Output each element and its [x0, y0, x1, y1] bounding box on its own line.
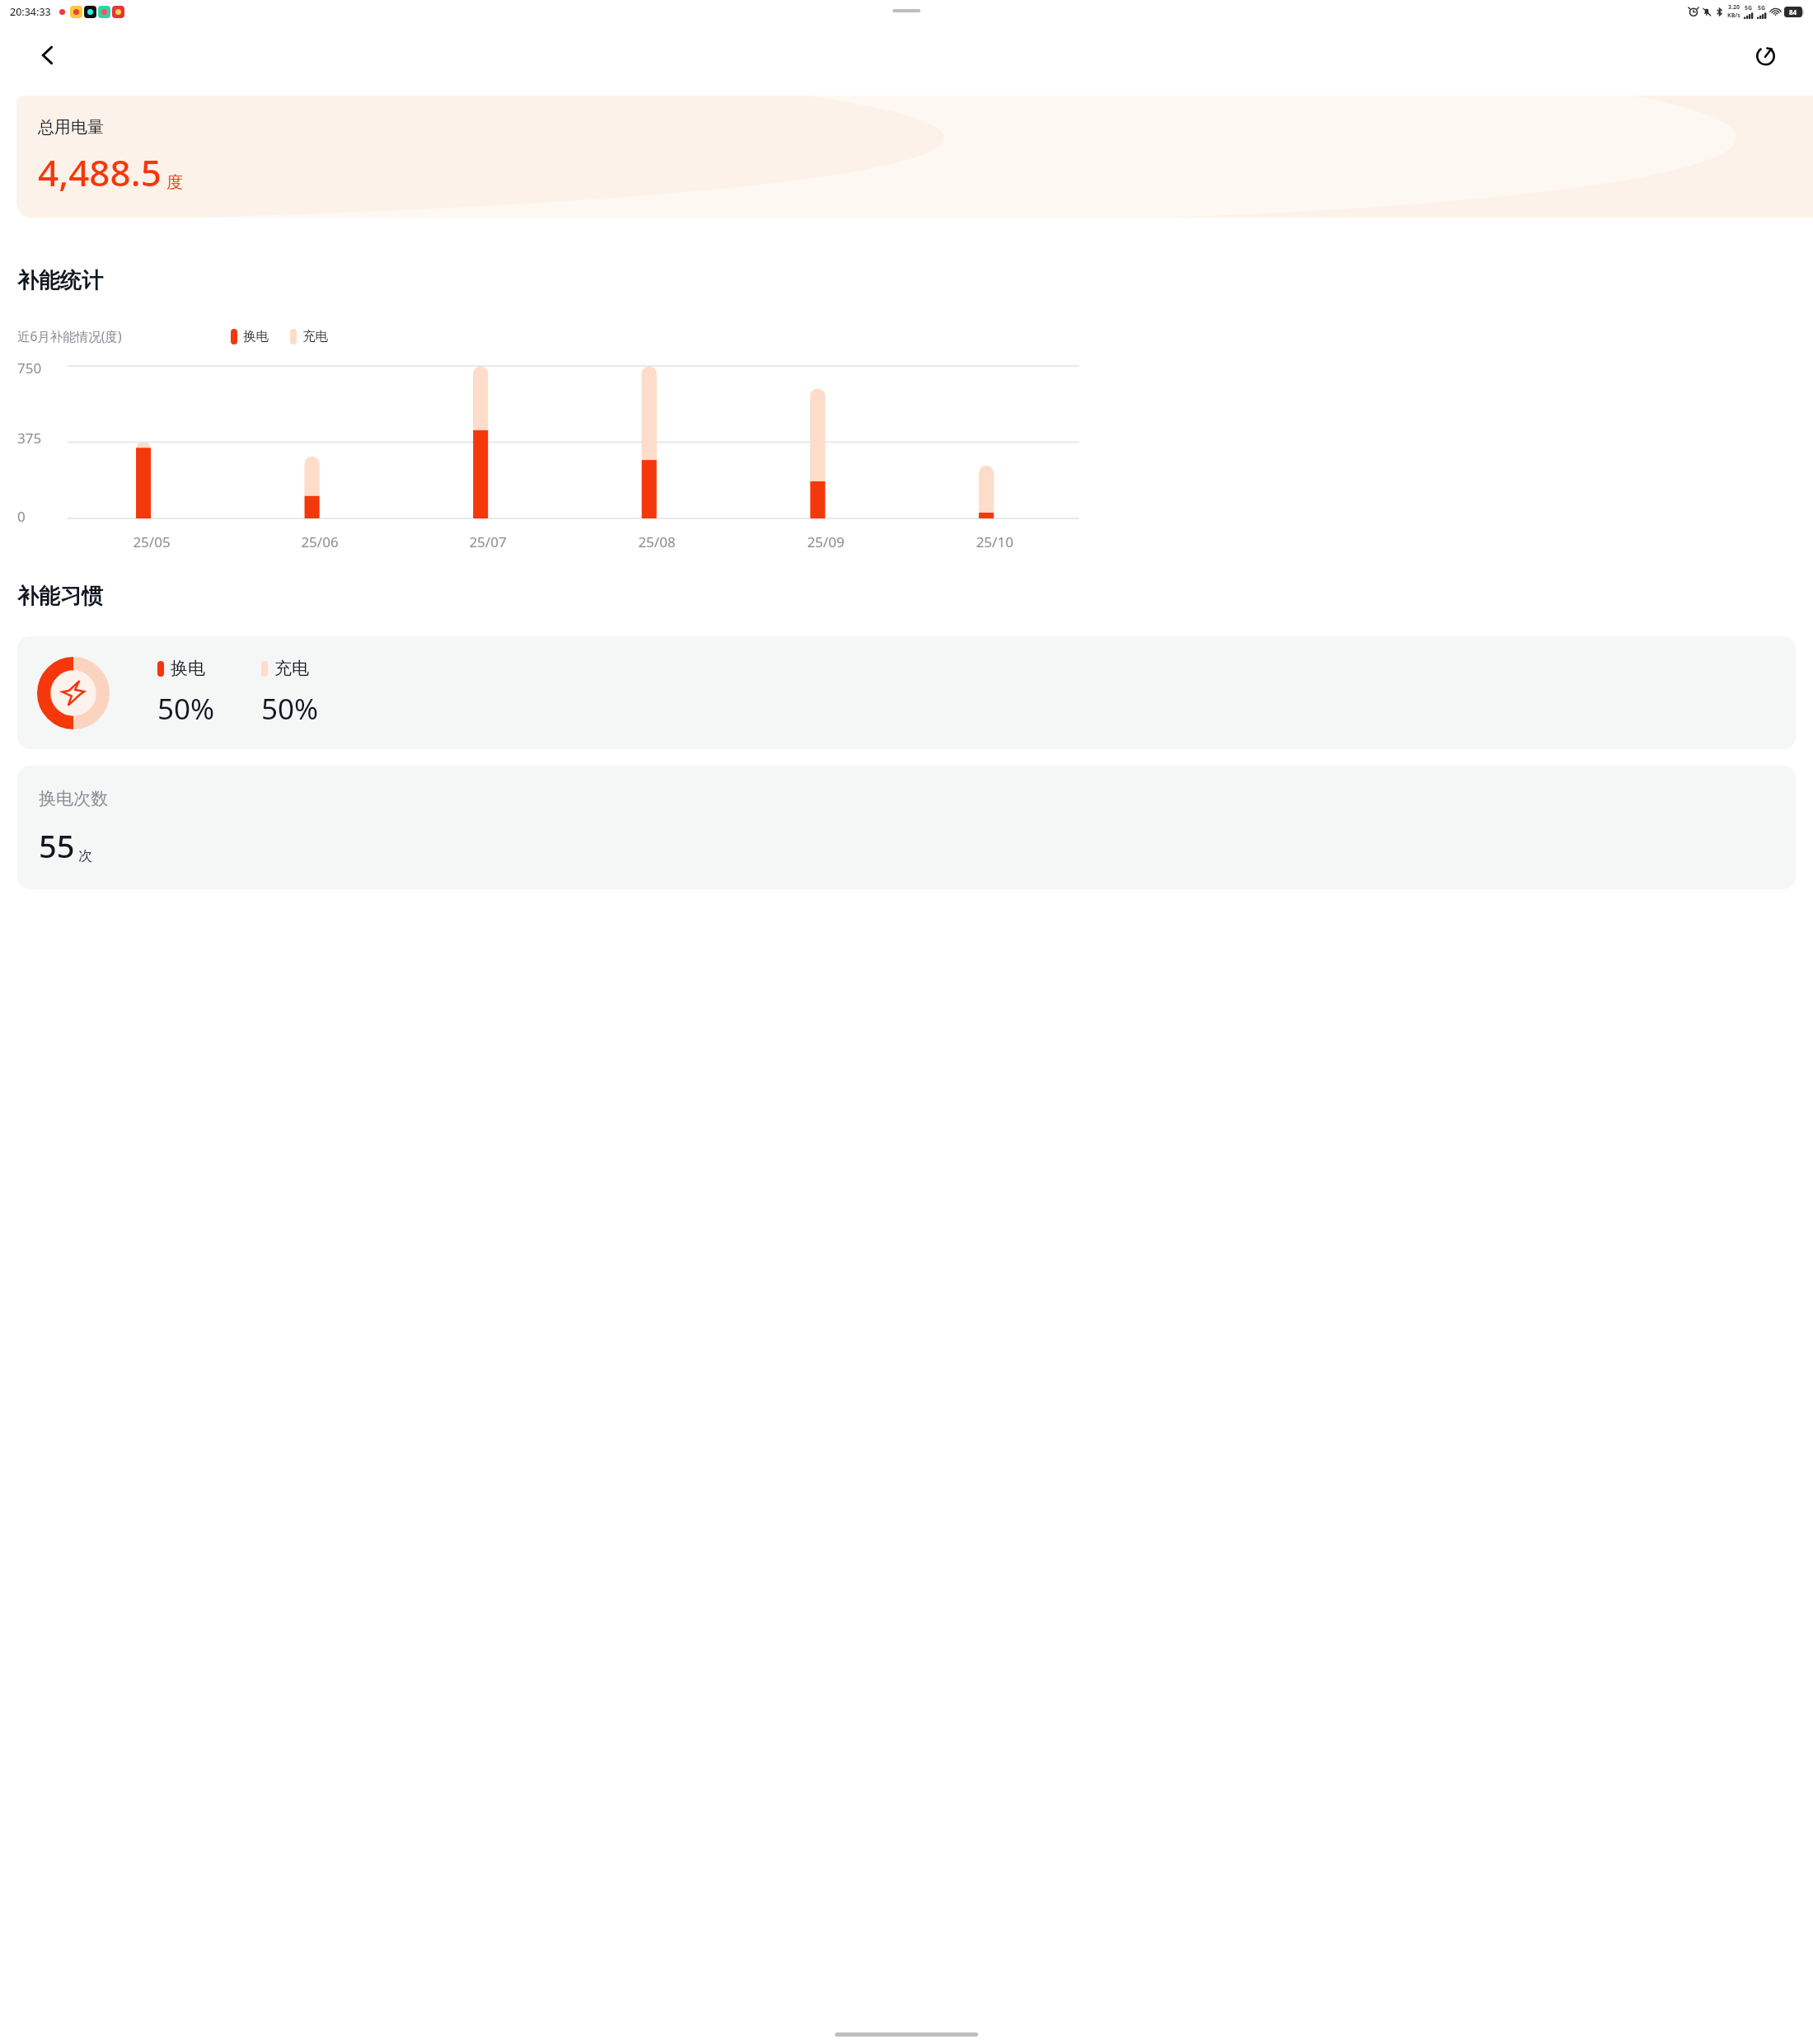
button[interactable]: 总用电量 — [16, 96, 1813, 218]
staticText: 3.20 — [1728, 3, 1740, 12]
staticText: 50% — [157, 689, 215, 729]
staticText: 换电次数 — [39, 788, 108, 809]
staticText: 补能习惯 — [17, 583, 103, 610]
button[interactable]: Refresh — [1745, 35, 1785, 75]
staticText: 55 — [39, 824, 75, 867]
staticText: KB/s — [1727, 12, 1740, 20]
staticText: 25/10 — [976, 532, 1014, 551]
button[interactable]: 换电 — [17, 636, 1796, 749]
staticText: 20:34:33 — [10, 5, 51, 19]
staticText: 25/06 — [301, 532, 339, 551]
staticText: 次 — [78, 847, 92, 865]
button[interactable]: 换电次数 — [17, 766, 1796, 889]
staticText: 充电 — [274, 658, 309, 679]
staticText: 充电 — [302, 328, 328, 345]
staticText: 5G — [1745, 4, 1753, 12]
staticText: 25/05 — [133, 532, 171, 551]
staticText: 0 — [17, 507, 26, 526]
staticText: 总用电量 — [38, 117, 104, 138]
staticText: 50% — [261, 689, 319, 729]
staticText: 25/09 — [807, 532, 845, 551]
staticText: 换电 — [243, 328, 269, 345]
staticText: 4,488.5 — [38, 148, 162, 197]
staticText: 度 — [166, 172, 183, 193]
staticText: 5G — [1758, 4, 1766, 12]
staticText: 补能统计 — [17, 267, 103, 294]
staticText: 375 — [17, 429, 42, 448]
staticText: 84 — [1789, 7, 1797, 16]
staticText: 近6月补能情况(度) — [17, 327, 122, 345]
staticText: 换电 — [171, 658, 205, 679]
staticText: 25/07 — [469, 532, 507, 551]
staticText: 25/08 — [638, 532, 676, 551]
staticText: 750 — [17, 359, 42, 377]
button[interactable]: Back — [28, 35, 68, 75]
